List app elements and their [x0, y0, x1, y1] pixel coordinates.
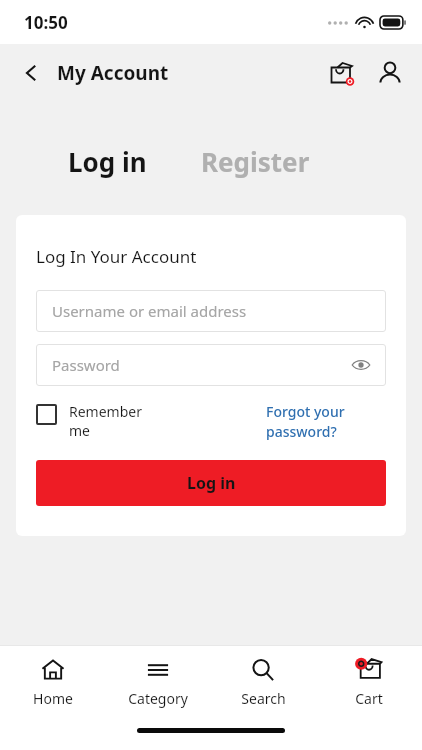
- staticText: 10:50: [24, 11, 68, 34]
- button[interactable]: Search: [210, 646, 316, 718]
- button[interactable]: Password: [36, 344, 386, 386]
- staticText: Register: [201, 144, 310, 179]
- button[interactable]: Remember me: [36, 402, 266, 440]
- button[interactable]: Back: [12, 53, 52, 93]
- button[interactable]: Account: [370, 53, 410, 93]
- button[interactable]: Log in: [36, 460, 386, 506]
- staticText: Username or email address: [52, 301, 247, 321]
- staticText: Category: [128, 689, 188, 708]
- button[interactable]: Cart: [316, 646, 422, 718]
- button[interactable]: Category: [105, 646, 210, 718]
- button[interactable]: Register: [197, 140, 314, 183]
- button[interactable]: Forgot your password?: [266, 402, 386, 442]
- staticText: Log in: [187, 472, 236, 494]
- button[interactable]: Cart: [322, 53, 362, 93]
- staticText: My Account: [57, 60, 169, 86]
- staticText: Log in: [68, 144, 147, 179]
- other: Show password: [350, 354, 372, 376]
- staticText: Password: [52, 355, 120, 375]
- staticText: Home: [33, 689, 73, 708]
- button[interactable]: Log in: [64, 140, 151, 183]
- staticText: Remember me: [69, 402, 155, 440]
- staticText: Cart: [355, 689, 383, 708]
- button[interactable]: Home: [0, 646, 105, 718]
- staticText: Forgot your password?: [266, 402, 386, 442]
- staticText: Log In Your Account: [36, 245, 197, 268]
- staticText: Search: [241, 689, 286, 708]
- button[interactable]: Username or email address: [36, 290, 386, 332]
